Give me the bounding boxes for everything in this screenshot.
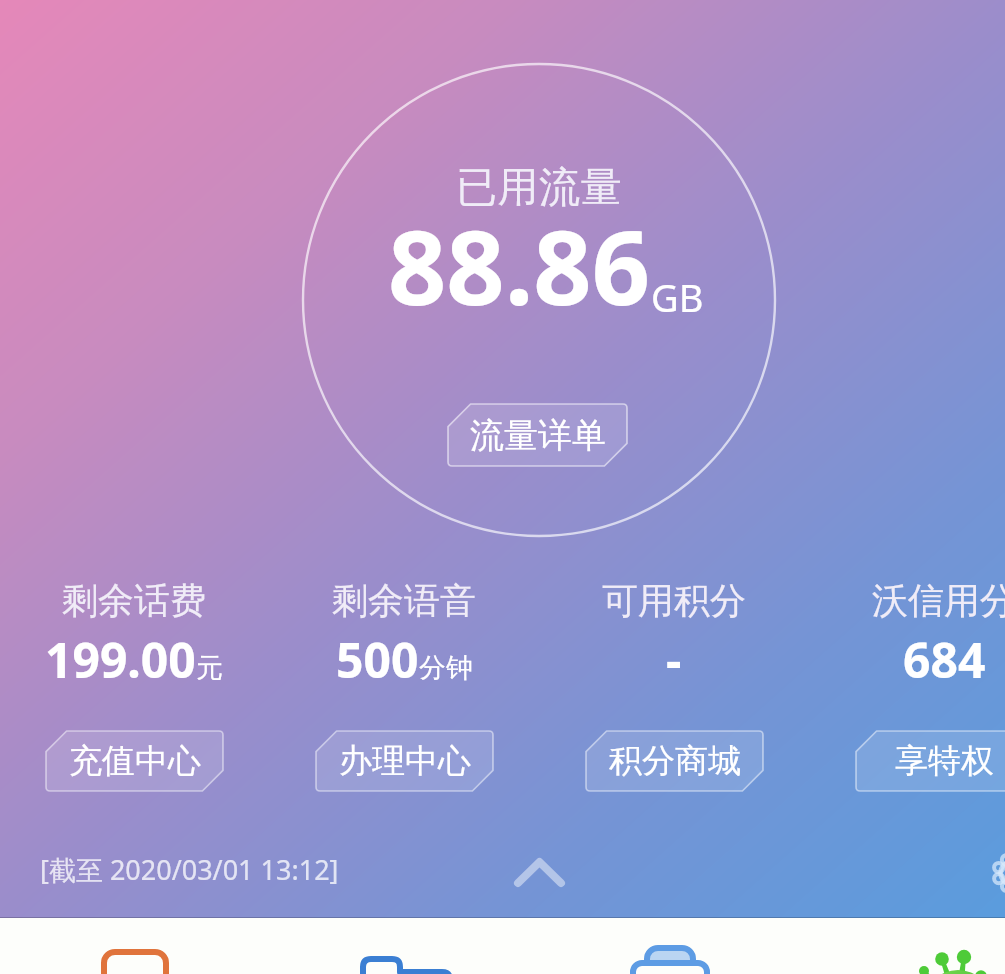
staticText: 办理中心	[339, 740, 471, 782]
staticText: -	[666, 627, 682, 692]
staticText: 沃信用分	[872, 578, 1005, 623]
staticText: 500	[336, 627, 419, 692]
staticText: 已用流量	[456, 162, 622, 214]
staticText: [截至 2020/03/01 13:12]	[40, 851, 339, 888]
staticText: 流量详单	[470, 414, 606, 457]
staticText: 享特权	[895, 740, 994, 782]
button[interactable]: 办理中心	[316, 731, 493, 791]
staticText: 积分商城	[609, 740, 741, 782]
button[interactable]: 充值中心	[46, 731, 223, 791]
staticText: 元	[196, 651, 223, 685]
button[interactable]: 我的	[888, 918, 1005, 974]
staticText: 分钟	[419, 651, 473, 685]
staticText: GB	[651, 271, 704, 323]
button[interactable]: 商城	[608, 918, 732, 974]
button[interactable]: Settings	[994, 856, 1005, 894]
button[interactable]: 服务	[343, 918, 467, 974]
staticText: 199.00	[45, 627, 196, 692]
staticText: 剩余话费	[62, 578, 206, 623]
button[interactable]: Collapse	[514, 858, 565, 887]
staticText: 充值中心	[69, 740, 201, 782]
staticText: 剩余语音	[332, 578, 476, 623]
button[interactable]: 享特权	[856, 731, 1005, 791]
button[interactable]: 流量详单	[448, 404, 627, 466]
button[interactable]: 首页	[73, 918, 197, 974]
staticText: 可用积分	[602, 578, 746, 623]
staticText: 88.86	[388, 196, 651, 335]
button[interactable]: 积分商城	[586, 731, 763, 791]
staticText: 684	[903, 627, 986, 692]
